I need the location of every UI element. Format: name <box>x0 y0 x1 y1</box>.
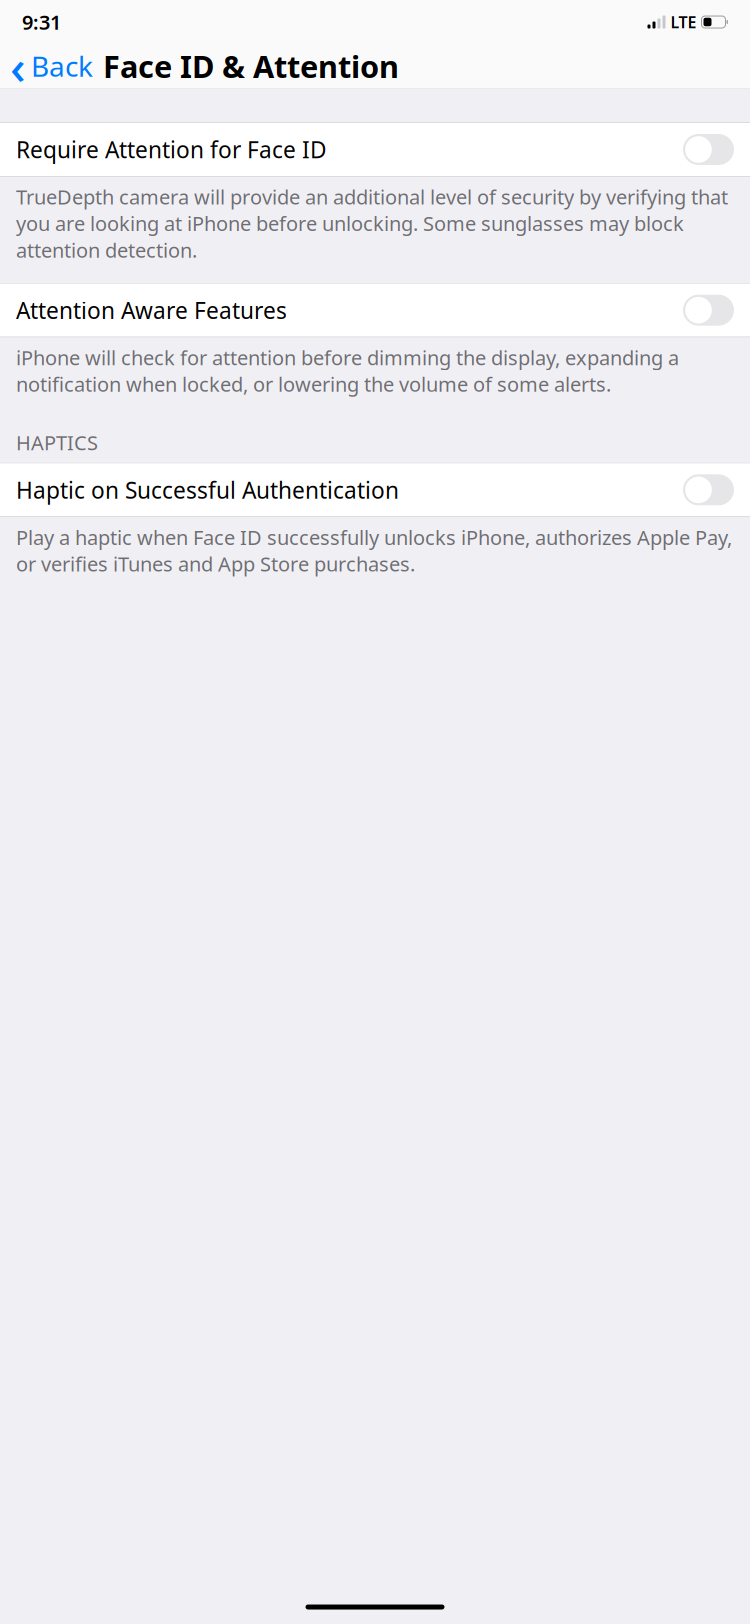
staticText: HAPTICS <box>16 429 98 456</box>
button[interactable]: Require Attention for Face ID <box>0 123 750 176</box>
staticText: 9:31 <box>22 9 61 35</box>
staticText: Haptic on Successful Authentication <box>16 475 399 505</box>
staticText: iPhone will check for attention before d… <box>16 344 679 397</box>
button[interactable]: Attention Aware Features <box>0 284 750 337</box>
button[interactable]: Haptic on Successful Authentication <box>0 463 750 516</box>
staticText: ‹ <box>10 34 26 98</box>
staticText: Back <box>31 47 93 85</box>
staticText: LTE <box>670 11 696 33</box>
staticText: Attention Aware Features <box>16 295 287 325</box>
staticText: TrueDepth camera will provide an additio… <box>16 183 728 263</box>
staticText: Face ID & Attention <box>103 46 399 86</box>
button[interactable]: ‹ <box>0 44 99 88</box>
staticText: Require Attention for Face ID <box>16 134 327 164</box>
staticText: Play a haptic when Face ID successfully … <box>16 524 732 577</box>
